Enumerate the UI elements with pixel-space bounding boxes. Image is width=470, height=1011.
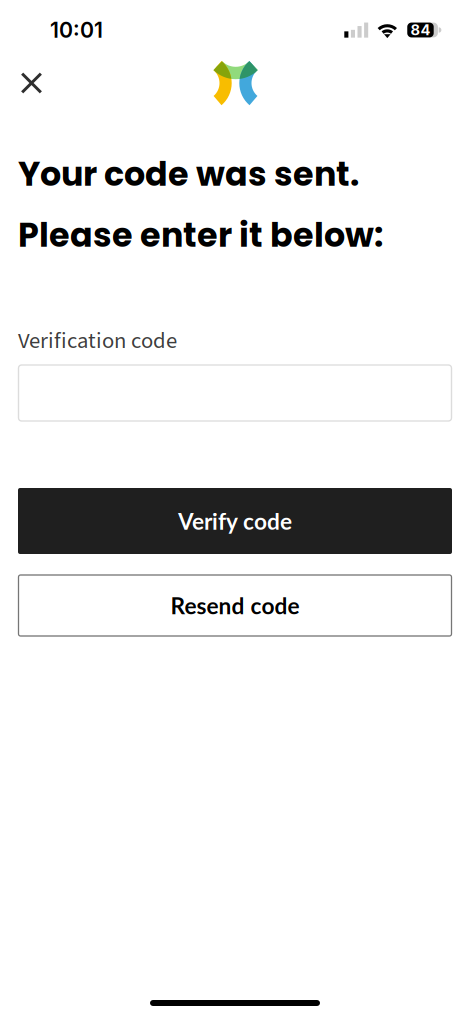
button[interactable]: Close — [8, 60, 54, 106]
staticText: Resend code — [170, 592, 299, 619]
button[interactable]: Verify code — [18, 488, 452, 554]
staticText: Verification code — [18, 325, 177, 357]
staticText: Please enter it below: — [18, 212, 383, 258]
staticText: 84 — [410, 21, 430, 39]
button[interactable]: Resend code — [18, 575, 451, 636]
staticText: Your code was sent. — [18, 151, 359, 197]
staticText: Verify code — [178, 507, 292, 535]
staticText: 10:01 — [50, 17, 103, 43]
